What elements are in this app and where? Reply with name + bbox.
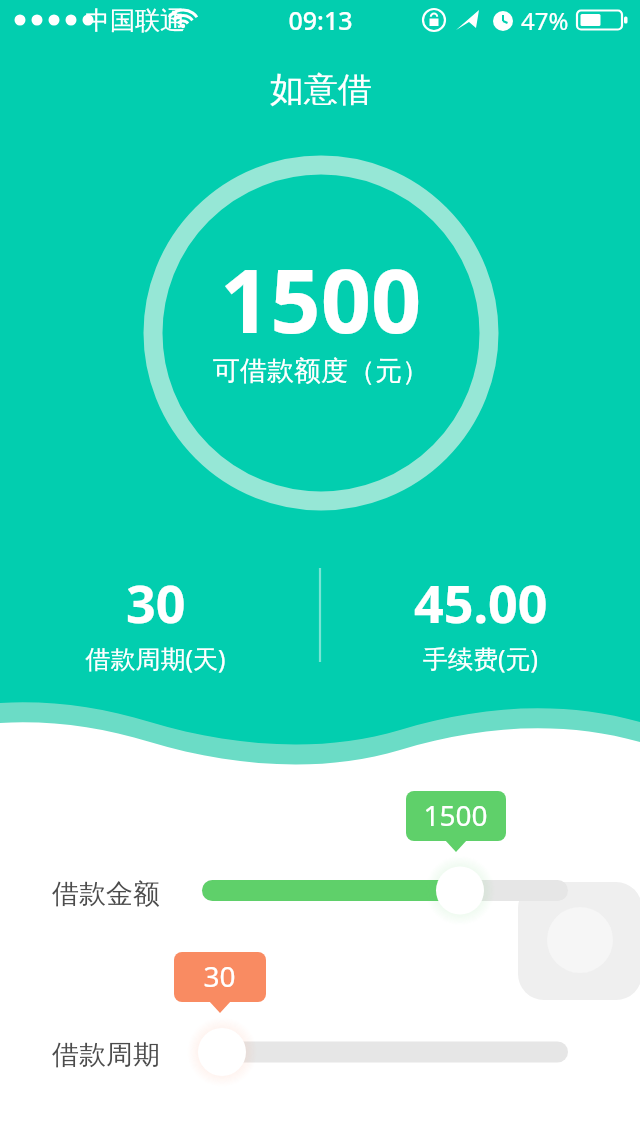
button[interactable]: Confirm <box>510 874 640 1008</box>
button[interactable]: Loan period slider <box>196 1026 576 1080</box>
button[interactable]: Loan amount slider <box>196 864 576 918</box>
button[interactable]: Available credit 1500 yuan <box>145 157 497 509</box>
